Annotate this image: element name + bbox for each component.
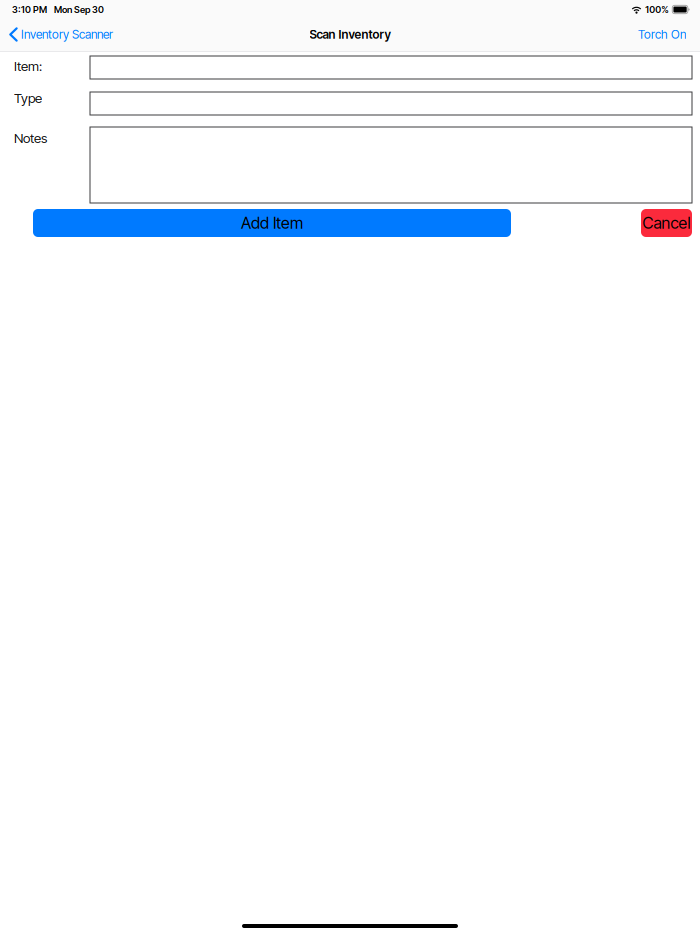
staticText: Torch On <box>638 27 686 42</box>
button[interactable]: Add Item <box>33 209 511 237</box>
button[interactable]: Torch On <box>630 19 700 50</box>
staticText: Type <box>14 90 42 106</box>
button[interactable]: Type <box>90 92 692 115</box>
staticText: Mon Sep 30 <box>54 4 104 15</box>
staticText: Inventory Scanner <box>21 27 113 42</box>
staticText: Scan Inventory <box>309 27 390 42</box>
staticText: Add Item <box>241 213 303 233</box>
staticText: 3:10 PM <box>12 4 47 15</box>
button[interactable]: Item: <box>90 56 692 79</box>
staticText: Item: <box>14 58 42 74</box>
button[interactable]: Notes <box>90 127 692 203</box>
button[interactable]: Inventory Scanner <box>0 19 121 50</box>
staticText: Cancel <box>642 213 690 233</box>
button[interactable]: Cancel <box>641 209 692 237</box>
staticText: 100% <box>645 4 669 15</box>
staticText: Notes <box>14 130 47 146</box>
